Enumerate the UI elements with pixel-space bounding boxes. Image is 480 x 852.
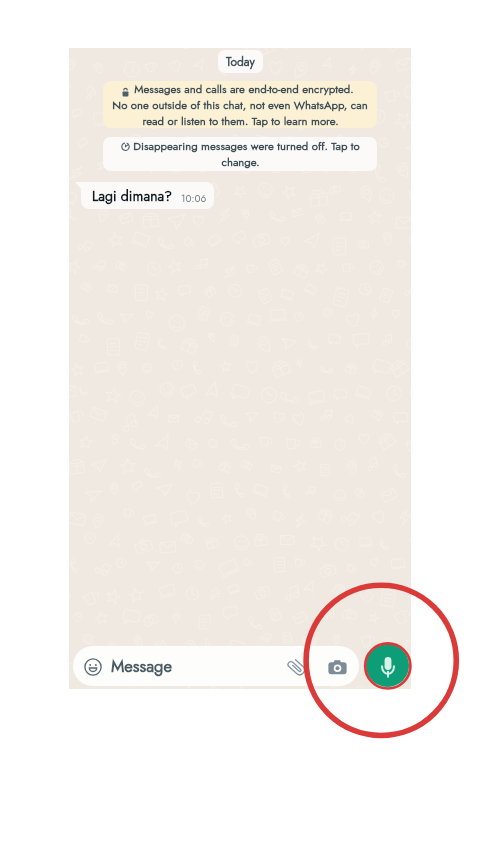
button[interactable]: Attach [288,657,305,677]
staticText: Lagi dimana? [92,186,173,206]
staticText: change. [221,154,260,170]
staticText: 10:06 [181,191,207,205]
staticText: Today [226,53,255,70]
button[interactable]: Emoji [84,658,102,676]
button[interactable]: Today [218,50,263,73]
button[interactable]: Emoji [73,646,359,686]
button[interactable]: Record voice message [366,644,409,687]
button[interactable]: Messages and calls are end-to-end encryp… [103,81,377,128]
staticText: No one outside of this chat, not even Wh… [112,97,368,113]
staticText: Messages and calls are end-to-end encryp… [134,81,354,97]
button[interactable]: Lagi dimana? [81,182,214,209]
button[interactable]: Camera [328,658,347,677]
staticText: Disappearing messages were turned off. T… [133,138,360,154]
staticText: Message [111,654,173,678]
button[interactable]: Disappearing messages were turned off. T… [103,137,377,171]
staticText: read or listen to them. Tap to learn mor… [142,113,339,128]
